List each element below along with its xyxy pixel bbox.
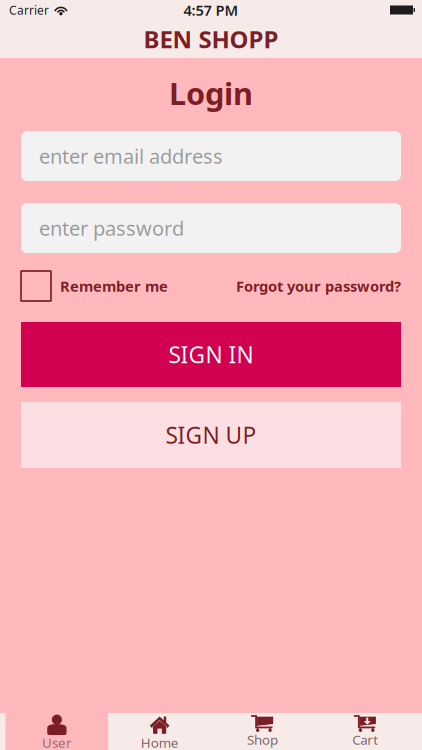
staticText: Remember me	[60, 276, 168, 296]
staticText: User	[42, 734, 72, 750]
staticText: SIGN UP	[165, 420, 256, 450]
button[interactable]: BEN SHOPP	[0, 20, 422, 58]
button[interactable]: Home	[108, 713, 211, 750]
button[interactable]: Remember me	[21, 271, 168, 301]
button[interactable]: User	[5, 713, 108, 750]
staticText: Shop	[247, 731, 278, 748]
staticText: enter email address	[39, 143, 223, 169]
button[interactable]: Forgot your password?	[236, 276, 401, 296]
button[interactable]: SIGN IN	[21, 322, 401, 387]
staticText: enter password	[39, 215, 184, 241]
staticText: BEN SHOPP	[143, 23, 278, 55]
staticText: Forgot your password?	[236, 276, 401, 296]
staticText: 4:57 PM	[183, 0, 238, 20]
button[interactable]: SIGN UP	[21, 402, 401, 468]
button[interactable]: Shop	[211, 713, 314, 750]
staticText: Cart	[352, 731, 378, 748]
staticText: Login	[169, 73, 253, 113]
staticText: SIGN IN	[168, 339, 253, 369]
button[interactable]: Cart	[314, 713, 417, 750]
staticText: Home	[141, 734, 179, 750]
staticText: Carrier	[9, 2, 49, 18]
